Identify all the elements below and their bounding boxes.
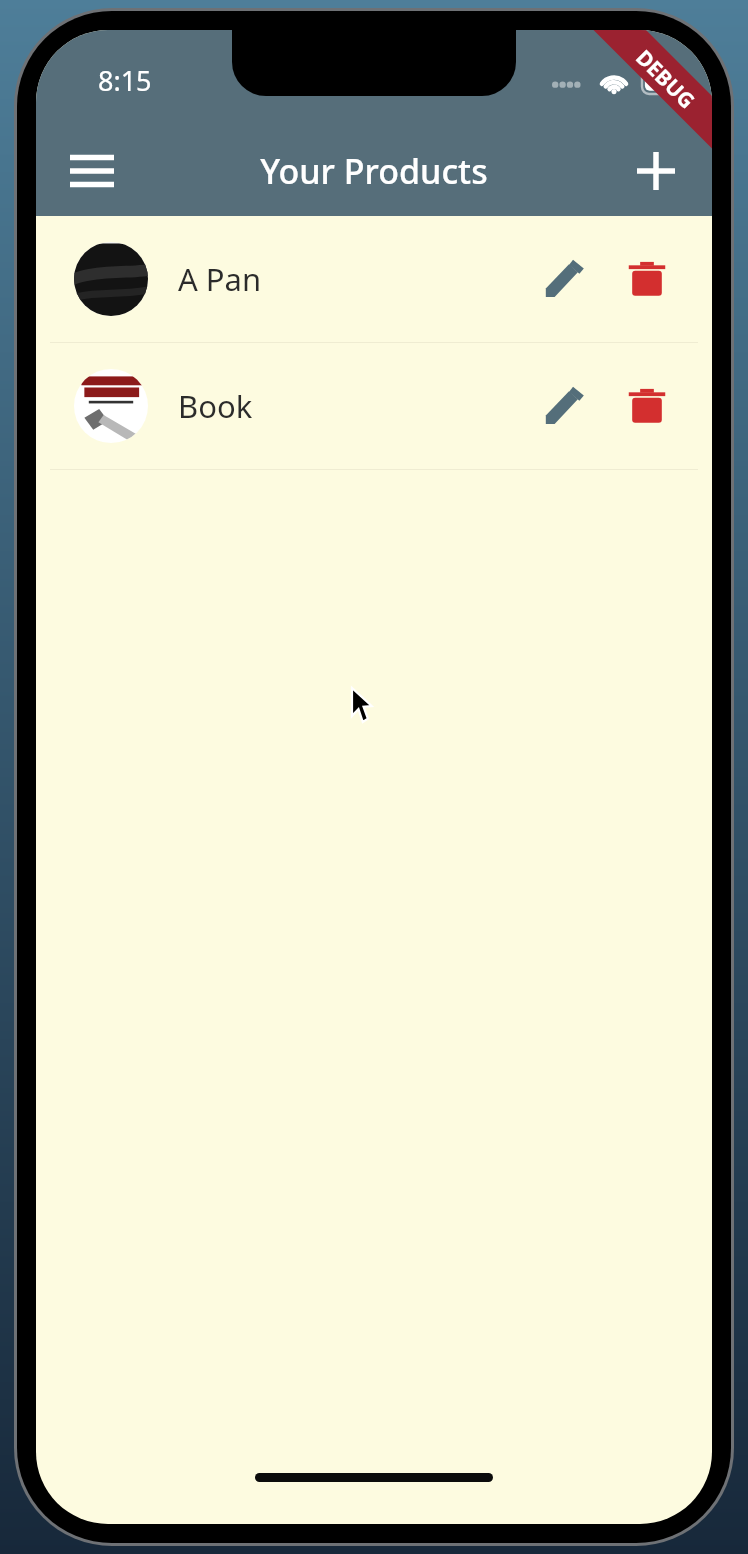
staticText: 8:15 <box>98 62 152 99</box>
staticText: A Pan <box>178 258 262 300</box>
button[interactable]: Edit Book <box>526 367 604 445</box>
button[interactable]: Menu <box>52 131 132 211</box>
button[interactable]: Delete A Pan <box>608 240 686 318</box>
button[interactable]: A Pan <box>36 216 712 342</box>
button[interactable]: Delete Book <box>608 367 686 445</box>
staticText: DEBUG <box>629 43 701 115</box>
staticText: Book <box>178 385 253 427</box>
button[interactable]: Edit A Pan <box>526 240 604 318</box>
button[interactable]: Add product <box>616 131 696 211</box>
button[interactable]: Book <box>36 343 712 469</box>
staticText: Your Products <box>260 148 488 194</box>
